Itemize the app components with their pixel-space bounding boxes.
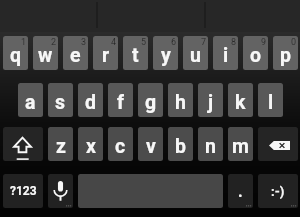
button[interactable]: z: [48, 127, 73, 161]
staticText: s: [55, 91, 66, 114]
staticText: w: [38, 44, 53, 67]
button[interactable]: a: [18, 83, 43, 117]
staticText: m: [232, 135, 249, 158]
button[interactable]: g: [138, 83, 163, 117]
staticText: 2: [51, 37, 57, 48]
staticText: b: [175, 135, 186, 158]
button[interactable]: q: [3, 36, 28, 70]
button[interactable]: b: [168, 127, 193, 161]
staticText: :-): [271, 184, 285, 199]
staticText: ?123: [10, 184, 37, 198]
button[interactable]: Period: [228, 174, 253, 208]
staticText: d: [85, 91, 96, 114]
staticText: 4: [111, 37, 117, 48]
staticText: q: [10, 44, 21, 67]
button[interactable]: w: [33, 36, 58, 70]
staticText: 8: [231, 37, 237, 48]
staticText: y: [161, 44, 171, 67]
staticText: h: [175, 91, 186, 114]
button[interactable]: Voice input: [48, 174, 73, 208]
button[interactable]: v: [138, 127, 163, 161]
button[interactable]: Emoticon: [258, 174, 298, 208]
button[interactable]: l: [258, 83, 283, 117]
staticText: u: [190, 44, 201, 67]
staticText: v: [146, 135, 156, 158]
staticText: n: [205, 135, 216, 158]
button[interactable]: k: [228, 83, 253, 117]
button[interactable]: f: [108, 83, 133, 117]
staticText: g: [145, 91, 157, 114]
staticText: 5: [141, 37, 147, 48]
staticText: 3: [81, 37, 87, 48]
staticText: k: [235, 91, 246, 114]
staticText: x: [86, 135, 96, 158]
button[interactable]: x: [78, 127, 103, 161]
staticText: a: [25, 91, 36, 114]
staticText: 6: [171, 37, 177, 48]
staticText: 0: [291, 37, 297, 48]
button[interactable]: n: [198, 127, 223, 161]
staticText: j: [208, 91, 214, 114]
button[interactable]: Shift: [3, 127, 43, 161]
staticText: f: [117, 91, 124, 114]
staticText: .: [238, 182, 243, 201]
staticText: i: [223, 44, 229, 67]
staticText: z: [56, 135, 66, 158]
button[interactable]: p: [273, 36, 298, 70]
staticText: 9: [261, 37, 267, 48]
staticText: p: [280, 44, 291, 67]
staticText: e: [70, 44, 81, 67]
staticText: r: [102, 44, 110, 67]
staticText: l: [268, 91, 274, 114]
button[interactable]: c: [108, 127, 133, 161]
staticText: t: [132, 44, 139, 67]
button[interactable]: i: [213, 36, 238, 70]
staticText: o: [250, 44, 262, 67]
staticText: 1: [21, 37, 27, 48]
button[interactable]: e: [63, 36, 88, 70]
button[interactable]: m: [228, 127, 253, 161]
button[interactable]: y: [153, 36, 178, 70]
button[interactable]: Delete: [258, 127, 298, 161]
staticText: c: [115, 135, 126, 158]
button[interactable]: u: [183, 36, 208, 70]
button[interactable]: j: [198, 83, 223, 117]
button[interactable]: r: [93, 36, 118, 70]
button[interactable]: s: [48, 83, 73, 117]
staticText: 7: [201, 37, 207, 48]
button[interactable]: d: [78, 83, 103, 117]
button[interactable]: Symbols: [3, 174, 43, 208]
button[interactable]: t: [123, 36, 148, 70]
button[interactable]: o: [243, 36, 268, 70]
button[interactable]: h: [168, 83, 193, 117]
